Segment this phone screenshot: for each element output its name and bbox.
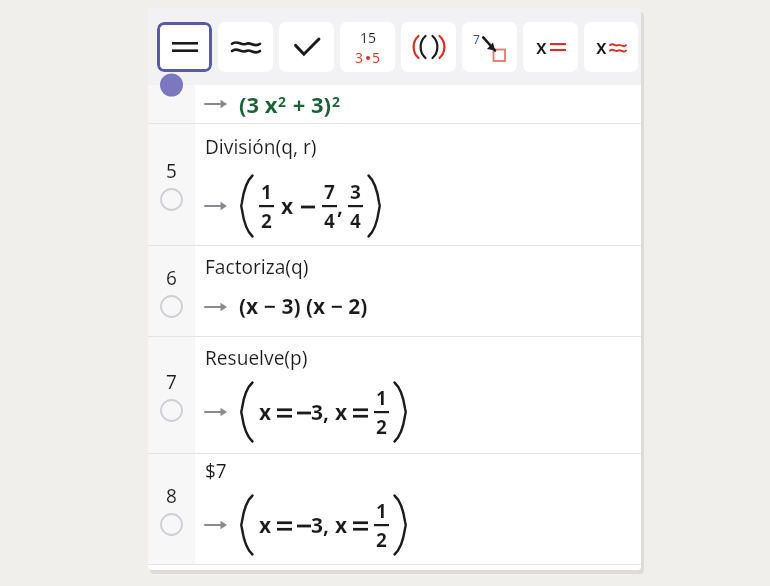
staticText: 3 (355, 48, 364, 67)
button[interactable]: Keep input (279, 22, 334, 72)
staticText: (3 x (239, 89, 278, 119)
staticText: Resuelve(p) (205, 345, 308, 371)
staticText: 7 (324, 179, 335, 205)
button[interactable]: (3 x (148, 85, 641, 123)
staticText: 7 (166, 369, 177, 395)
button[interactable]: Evaluate exactly (157, 22, 212, 72)
staticText: Factoriza(q) (205, 254, 309, 280)
staticText: 1 (261, 179, 272, 205)
staticText: x (259, 511, 272, 540)
button[interactable]: 7 (148, 337, 641, 453)
staticText: x (281, 192, 294, 221)
staticText: x (259, 398, 272, 427)
staticText: 1 (376, 498, 387, 524)
staticText: 4 (350, 208, 361, 234)
staticText: (x − 3) (x − 2) (239, 292, 368, 321)
staticText: 5 (166, 158, 177, 184)
staticText: x (335, 511, 348, 540)
button[interactable]: 5 (148, 124, 641, 245)
staticText: 2 (376, 414, 387, 440)
staticText: 1 (376, 385, 387, 411)
button[interactable]: 8 (148, 454, 641, 564)
staticText: $7 (205, 458, 227, 484)
staticText: 15 (360, 28, 377, 47)
staticText: 7 (473, 31, 480, 47)
staticText: 8 (166, 483, 177, 509)
button[interactable]: Factor number (340, 22, 395, 72)
staticText: 3 (350, 179, 361, 205)
staticText: 6 (166, 265, 177, 291)
staticText: , (337, 192, 343, 221)
staticText: x (335, 398, 348, 427)
staticText: 4 (324, 208, 335, 234)
button[interactable]: 6 (148, 246, 641, 336)
staticText: 2 (376, 527, 387, 553)
staticText: 2 (261, 208, 272, 234)
button[interactable]: Solve numerically (584, 22, 638, 72)
staticText: 3, (311, 511, 329, 540)
staticText: x (596, 34, 607, 60)
staticText: 2 (278, 92, 287, 111)
staticText: 2 (332, 92, 341, 111)
button[interactable]: Solve exactly (523, 22, 578, 72)
staticText: División(q, r) (205, 134, 317, 160)
button[interactable]: Numeric evaluate (218, 22, 273, 72)
staticText: + 3) (287, 89, 332, 119)
staticText: 5 (372, 48, 381, 67)
button[interactable]: Substitute (462, 22, 517, 72)
staticText: 3, (311, 398, 329, 427)
staticText: x (536, 34, 547, 60)
button[interactable]: Expand brackets (401, 22, 456, 72)
